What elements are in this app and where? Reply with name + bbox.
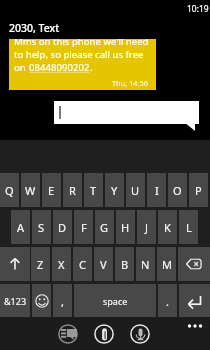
button[interactable]: Message input (54, 101, 200, 132)
button[interactable]: A (11, 210, 30, 244)
staticText: Z (37, 257, 44, 272)
button[interactable]: T (84, 173, 103, 207)
staticText: N (141, 257, 150, 272)
staticText: 10:19 (187, 3, 209, 15)
button[interactable]: O (168, 173, 187, 207)
staticText: J (145, 220, 149, 235)
staticText: H (121, 220, 130, 235)
button[interactable]: Messages (58, 324, 78, 344)
staticText: to help, so please call us free (14, 48, 144, 61)
button[interactable]: L (179, 210, 198, 244)
button[interactable]: H (116, 210, 135, 244)
staticText: G (100, 220, 109, 235)
button[interactable]: F (74, 210, 93, 244)
button[interactable]: space (74, 284, 156, 318)
button[interactable]: Backspace (178, 247, 210, 281)
button[interactable]: &123 (0, 284, 30, 318)
staticText: Mms on this phone we'll need (14, 39, 149, 48)
button[interactable]: K (158, 210, 177, 244)
button[interactable]: S (32, 210, 51, 244)
button[interactable]: B (115, 247, 134, 281)
button[interactable]: Emoji (32, 284, 51, 318)
staticText: Q (5, 183, 14, 198)
staticText: P (195, 183, 202, 198)
button[interactable]: Mms on this phone we'll need (9, 39, 156, 90)
button[interactable]: Attach (94, 324, 114, 344)
button[interactable]: V (94, 247, 113, 281)
staticText: A (17, 220, 25, 235)
staticText: F (81, 220, 87, 235)
button[interactable]: X (52, 247, 71, 281)
button[interactable]: P (189, 173, 208, 207)
staticText: Thu, 14:56 (112, 78, 149, 88)
button[interactable]: Z (31, 247, 50, 281)
staticText: M (162, 257, 172, 272)
staticText: B (121, 257, 129, 272)
button[interactable]: G (95, 210, 114, 244)
button[interactable]: More options (184, 319, 206, 335)
staticText: . (166, 294, 169, 309)
staticText: , (61, 294, 64, 309)
button[interactable]: . (158, 284, 177, 318)
staticText: T (90, 183, 97, 198)
staticText: E (48, 183, 55, 198)
staticText: 08448090202 (29, 61, 90, 74)
staticText: D (58, 220, 67, 235)
button[interactable]: M (157, 247, 176, 281)
button[interactable]: N (136, 247, 155, 281)
staticText: S (38, 220, 45, 235)
button[interactable]: D (53, 210, 72, 244)
button[interactable]: W (21, 173, 40, 207)
button[interactable]: Y (105, 173, 124, 207)
button[interactable]: E (42, 173, 61, 207)
button[interactable]: I (147, 173, 166, 207)
button[interactable]: R (63, 173, 82, 207)
button[interactable]: C (73, 247, 92, 281)
button[interactable]: U (126, 173, 145, 207)
staticText: X (58, 257, 65, 272)
staticText: I (155, 183, 159, 198)
staticText: &123 (4, 295, 27, 307)
button[interactable]: J (137, 210, 156, 244)
staticText: U (131, 183, 140, 198)
staticText: on (14, 61, 29, 74)
staticText: 2030, Text (9, 21, 60, 35)
staticText: L (186, 220, 192, 235)
staticText: space (103, 295, 128, 307)
button[interactable]: Voice (130, 324, 150, 344)
staticText: Y (111, 183, 118, 198)
staticText: R (69, 183, 76, 198)
staticText: K (164, 220, 171, 235)
staticText: W (25, 183, 36, 198)
button[interactable]: Q (0, 173, 19, 207)
button[interactable]: Shift (0, 247, 30, 281)
staticText: O (173, 183, 182, 198)
button[interactable]: Enter (179, 284, 210, 318)
staticText: . (90, 61, 93, 74)
staticText: C (79, 257, 86, 272)
staticText: V (100, 257, 107, 272)
button[interactable]: , (53, 284, 72, 318)
